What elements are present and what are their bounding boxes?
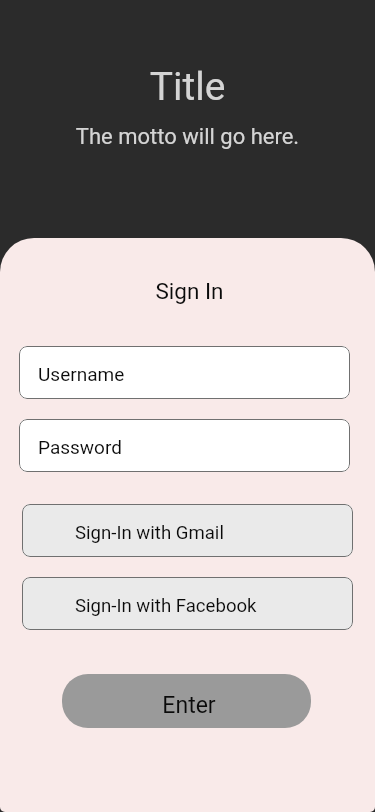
button[interactable]: Sign-In with Gmail	[22, 504, 353, 557]
staticText: Title	[0, 64, 375, 110]
button[interactable]: Username	[19, 346, 350, 399]
staticText: Username	[38, 363, 125, 385]
staticText: Sign-In with Facebook	[75, 595, 257, 617]
staticText: Sign In	[2, 278, 375, 304]
staticText: The motto will go here.	[0, 124, 375, 150]
staticText: Password	[38, 436, 122, 458]
button[interactable]: Sign-In with Facebook	[22, 577, 353, 630]
button[interactable]: Password	[19, 419, 350, 472]
button[interactable]: Enter	[62, 674, 311, 728]
staticText: Sign-In with Gmail	[75, 522, 224, 544]
staticText: Enter	[162, 692, 216, 719]
